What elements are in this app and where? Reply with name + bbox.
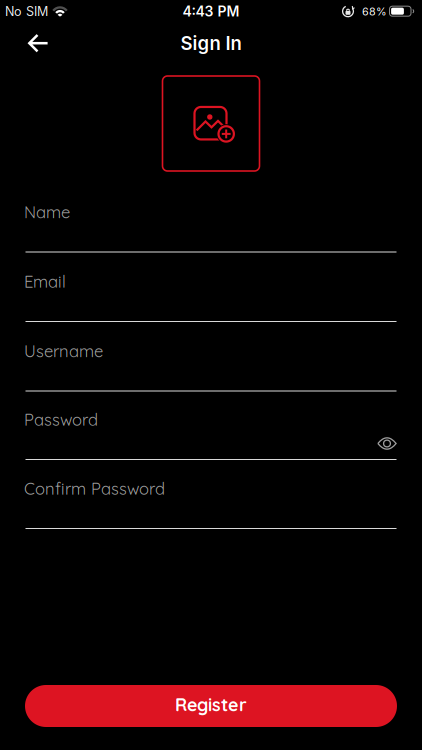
button[interactable]: Back [21,27,55,59]
staticText: Confirm Password [24,478,165,499]
staticText: Password [24,409,98,430]
staticText: Username [24,341,103,361]
staticText: Sign In [180,32,241,54]
button[interactable]: Register [25,685,397,727]
staticText: No SIM [5,4,48,19]
button[interactable]: Show password [373,431,401,455]
staticText: Register [175,693,247,716]
staticText: Name [24,202,70,222]
staticText: 4:43 PM [182,3,239,20]
button[interactable]: Add photo [162,76,259,171]
staticText: Email [24,271,66,292]
staticText: 68% [362,5,387,18]
